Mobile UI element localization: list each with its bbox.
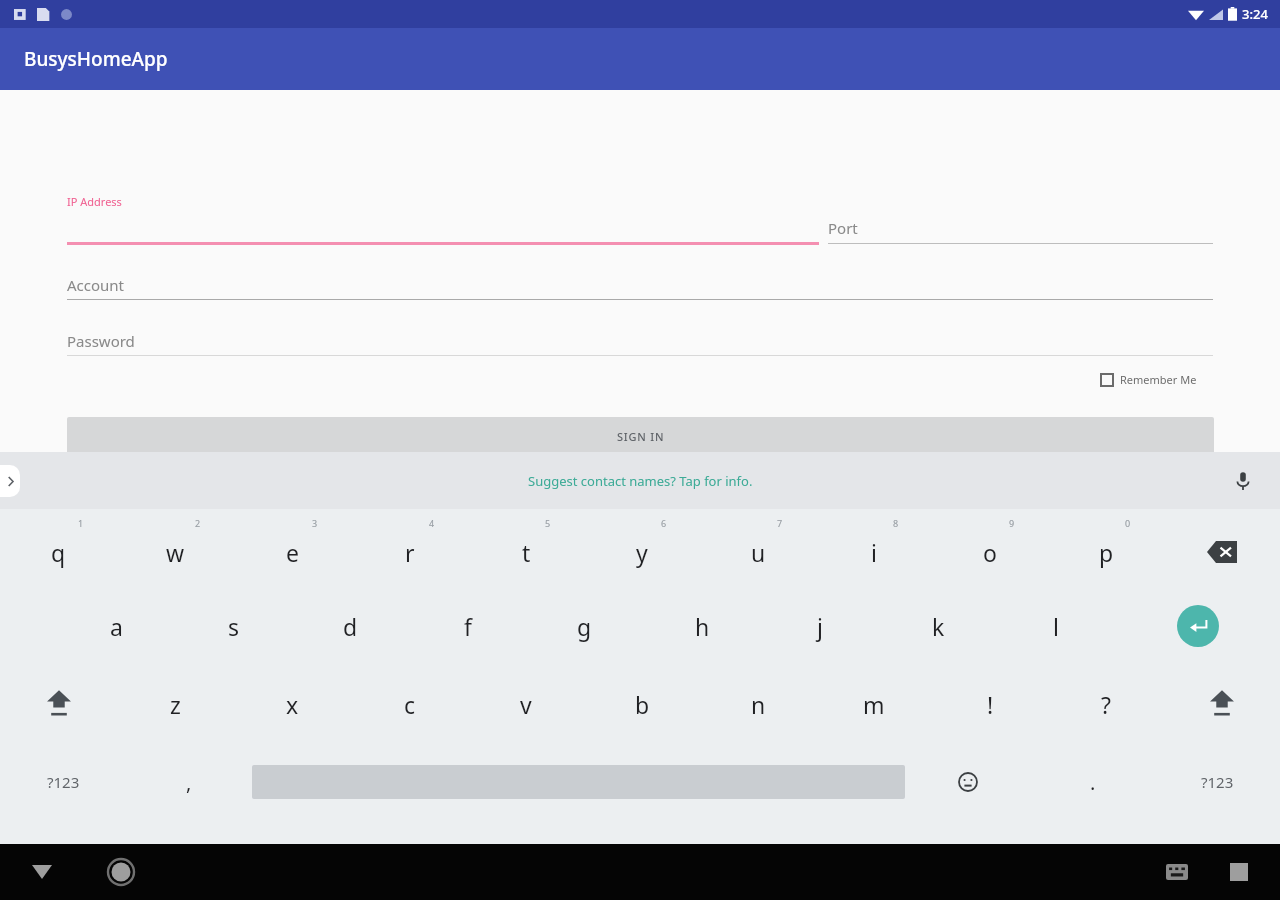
staticText: x [286, 689, 299, 720]
button[interactable]: k [879, 587, 997, 665]
staticText: p [1099, 537, 1114, 568]
button[interactable]: Voice input [1230, 468, 1256, 494]
staticText: u [751, 537, 766, 568]
staticText: f [464, 611, 472, 642]
staticText: . [1090, 769, 1096, 796]
button[interactable]: s [175, 587, 292, 665]
staticText: j [817, 611, 823, 642]
button[interactable]: Hide keyboard [26, 856, 58, 888]
button[interactable]: Enter [1115, 587, 1280, 665]
staticText: Password [67, 331, 135, 351]
staticText: 5 [545, 517, 551, 529]
button[interactable]: b [584, 665, 700, 743]
staticText: v [520, 689, 532, 720]
button[interactable]: 1 [0, 509, 117, 587]
button[interactable]: l [997, 587, 1115, 665]
staticText: 9 [1009, 517, 1015, 529]
staticText: d [343, 611, 358, 642]
button[interactable]: SIGN IN [67, 417, 1214, 455]
staticText: t [522, 537, 531, 568]
staticText: ? [1101, 689, 1111, 720]
staticText: s [228, 611, 240, 642]
button[interactable]: v [468, 665, 584, 743]
button[interactable]: ! [932, 665, 1048, 743]
button[interactable]: n [700, 665, 816, 743]
button[interactable]: Recent apps [1223, 856, 1255, 888]
staticText: ?123 [47, 772, 80, 792]
staticText: 2 [195, 517, 201, 529]
staticText: BusysHomeApp [24, 46, 168, 72]
button[interactable]: g [526, 587, 643, 665]
staticText: b [635, 689, 650, 720]
button[interactable]: c [351, 665, 468, 743]
staticText: n [751, 689, 766, 720]
button[interactable]: z [117, 665, 234, 743]
button[interactable]: Home [103, 854, 139, 890]
staticText: w [166, 537, 185, 568]
button[interactable]: 8 [816, 509, 932, 587]
staticText: 3 [312, 517, 318, 529]
staticText: z [170, 689, 181, 720]
button[interactable]: a [58, 587, 175, 665]
staticText: Remember Me [1120, 372, 1197, 387]
button[interactable]: 9 [932, 509, 1048, 587]
button[interactable]: m [816, 665, 932, 743]
staticText: SIGN IN [617, 429, 665, 444]
button[interactable]: d [292, 587, 409, 665]
staticText: c [404, 689, 416, 720]
button[interactable]: Space [252, 743, 905, 821]
staticText: r [405, 537, 415, 568]
button[interactable]: 4 [351, 509, 468, 587]
staticText: 0 [1125, 517, 1131, 529]
button[interactable]: 2 [117, 509, 234, 587]
staticText: m [863, 689, 885, 720]
staticText: k [932, 611, 945, 642]
staticText: o [983, 537, 997, 568]
staticText: IP Address [67, 194, 122, 209]
button[interactable]: j [761, 587, 879, 665]
button[interactable]: Remember Me [1098, 370, 1199, 389]
staticText: Account [67, 275, 125, 295]
staticText: Suggest contact names? Tap for info. [528, 472, 753, 490]
button[interactable]: Shift [0, 665, 117, 743]
staticText: y [636, 537, 648, 568]
button[interactable]: Shift [1164, 665, 1280, 743]
button[interactable]: , [126, 743, 252, 821]
staticText: h [695, 611, 710, 642]
button[interactable]: Expand suggestions [0, 465, 20, 497]
button[interactable]: Switch keyboard [1160, 855, 1194, 889]
button[interactable]: 7 [700, 509, 816, 587]
staticText: , [186, 769, 192, 796]
button[interactable]: Suggest contact names? Tap for info. [516, 464, 765, 498]
button[interactable]: f [409, 587, 526, 665]
button[interactable]: Backspace [1164, 509, 1280, 587]
staticText: 1 [78, 517, 84, 529]
staticText: a [110, 611, 123, 642]
button[interactable]: 6 [584, 509, 700, 587]
staticText: 7 [777, 517, 783, 529]
staticText: g [577, 611, 592, 642]
staticText: 8 [893, 517, 899, 529]
button[interactable]: 5 [468, 509, 584, 587]
button[interactable]: Emoji [905, 743, 1030, 821]
staticText: q [51, 537, 66, 568]
staticText: Port [828, 218, 858, 238]
button[interactable]: ?123 [0, 743, 126, 821]
button[interactable]: . [1030, 743, 1155, 821]
button[interactable]: h [643, 587, 761, 665]
staticText: 6 [661, 517, 667, 529]
staticText: e [286, 537, 299, 568]
button[interactable]: 3 [234, 509, 351, 587]
staticText: ! [987, 689, 994, 720]
button[interactable]: ?123 [1155, 743, 1280, 821]
staticText: ?123 [1201, 772, 1234, 792]
button[interactable]: 0 [1048, 509, 1164, 587]
button[interactable]: x [234, 665, 351, 743]
button[interactable]: ? [1048, 665, 1164, 743]
staticText: l [1053, 611, 1059, 642]
staticText: i [871, 537, 877, 568]
